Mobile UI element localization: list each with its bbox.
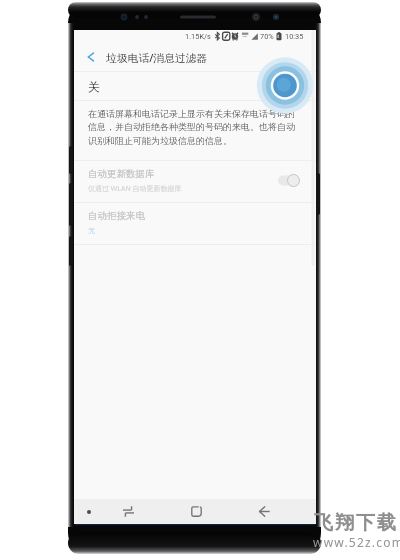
staticText: 10:35: [285, 32, 304, 41]
staticText: 自动更新数据库: [88, 168, 155, 180]
staticText: 70%: [260, 32, 274, 41]
button[interactable]: Back: [77, 43, 105, 71]
button[interactable]: 自动拒接来电: [74, 202, 316, 243]
staticText: www.52z.com: [313, 534, 400, 550]
button[interactable]: 关: [74, 72, 316, 100]
staticText: 在通话屏幕和电话记录上显示有关未保存电话号码的信息，并自动拒绝各种类型的号码的来…: [88, 108, 298, 147]
button[interactable]: Recents: [117, 499, 139, 524]
button[interactable]: More options: [80, 503, 97, 520]
staticText: 仅通过 WLAN 自动更新数据库: [88, 184, 182, 194]
staticText: 飞翔下载: [313, 511, 397, 535]
staticText: 无: [88, 226, 95, 235]
staticText: 垃圾电话/消息过滤器: [106, 50, 208, 65]
button[interactable]: Home: [185, 499, 207, 524]
staticText: 1.15K/s: [185, 32, 211, 41]
staticText: 关: [88, 79, 100, 94]
button[interactable]: Auto update database toggle: [278, 174, 300, 187]
staticText: 自动拒接来电: [88, 210, 145, 222]
button[interactable]: 自动更新数据库: [74, 160, 316, 201]
button[interactable]: Back: [253, 499, 275, 524]
